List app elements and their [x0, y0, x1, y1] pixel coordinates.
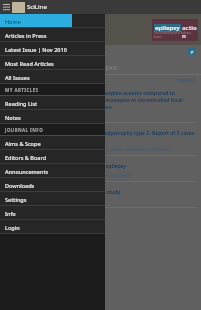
button[interactable]: Downloads — [0, 178, 105, 192]
staticText: Most Read Articles — [5, 60, 54, 67]
staticText: Epilepsy and Congenital Generalized Lipo… — [5, 130, 196, 144]
button[interactable]: Home — [0, 14, 105, 28]
staticText: epilepsy — [155, 24, 180, 32]
staticText: Downloads — [5, 182, 35, 189]
button[interactable]: Most Read Articles — [0, 56, 105, 70]
staticText: Sleep quality in adults with and without… — [5, 163, 127, 170]
button[interactable]: Login — [0, 220, 105, 234]
staticText: MOST READ — [84, 65, 118, 72]
staticText: Info — [5, 210, 16, 217]
staticText: Home — [5, 18, 21, 25]
staticText: All Issues — [5, 74, 30, 81]
staticText: Lorena Cantaluppi, Mario Romero, Giovann… — [5, 146, 169, 152]
staticText: JOURNAL INFO — [5, 127, 44, 133]
staticText: Anders Olsen, Jakob Christensen, Kjellbe… — [5, 198, 97, 204]
button[interactable]: Info — [0, 206, 105, 220]
button[interactable]: View All — [177, 77, 196, 84]
staticText: SciLine — [27, 3, 47, 11]
staticText: Settings — [5, 196, 27, 203]
button[interactable]: Open navigation drawer — [1, 2, 12, 13]
button[interactable]: Notes — [0, 110, 105, 124]
button[interactable]: Announcements — [0, 164, 105, 178]
button[interactable]: Latest Issue | Nov 2016 — [0, 42, 105, 56]
staticText: action — [182, 24, 198, 40]
button[interactable]: All Issues — [0, 70, 105, 84]
staticText: MY ARTICLES — [5, 87, 39, 93]
staticText: Jacob Lahr, Raffaele Nardone, Eugen Trin… — [5, 113, 98, 119]
button[interactable]: Reading List — [0, 96, 105, 110]
staticText: Announcements — [5, 168, 49, 175]
button[interactable]: Editors & Board — [0, 150, 105, 164]
staticText: Aims & Scope — [5, 140, 41, 147]
button[interactable]: Epilepsy incidence: a controlled nationa… — [0, 185, 201, 211]
staticText: Articles in Press — [5, 32, 47, 39]
staticText: Brivaracetam, lacosamide, and eslicarbaz… — [5, 90, 196, 111]
button[interactable]: Sleep quality in adults with and without… — [0, 159, 201, 185]
staticText: Latest Issue | Nov 2016 — [5, 46, 67, 53]
staticText: The Official Journal of Epilepsy Action — [154, 31, 198, 39]
button[interactable]: Settings — [0, 192, 105, 206]
staticText: Login — [5, 224, 20, 231]
button[interactable]: Twitter — [188, 48, 195, 55]
staticText: Reading List — [5, 100, 38, 107]
staticText: Epilepsy incidence: a controlled nationa… — [5, 189, 121, 196]
button[interactable]: Aims & Scope — [0, 136, 105, 150]
staticText: Notes — [5, 114, 21, 121]
button[interactable]: Articles in Press — [0, 28, 105, 42]
staticText: Preston B. Wannamaker, Janelle L. Wagner… — [5, 172, 132, 178]
staticText: Editors & Board — [5, 154, 47, 161]
button[interactable]: Brivaracetam, lacosamide, and eslicarbaz… — [0, 86, 201, 126]
button[interactable]: Epilepsy and Congenital Generalized Lipo… — [0, 126, 201, 159]
